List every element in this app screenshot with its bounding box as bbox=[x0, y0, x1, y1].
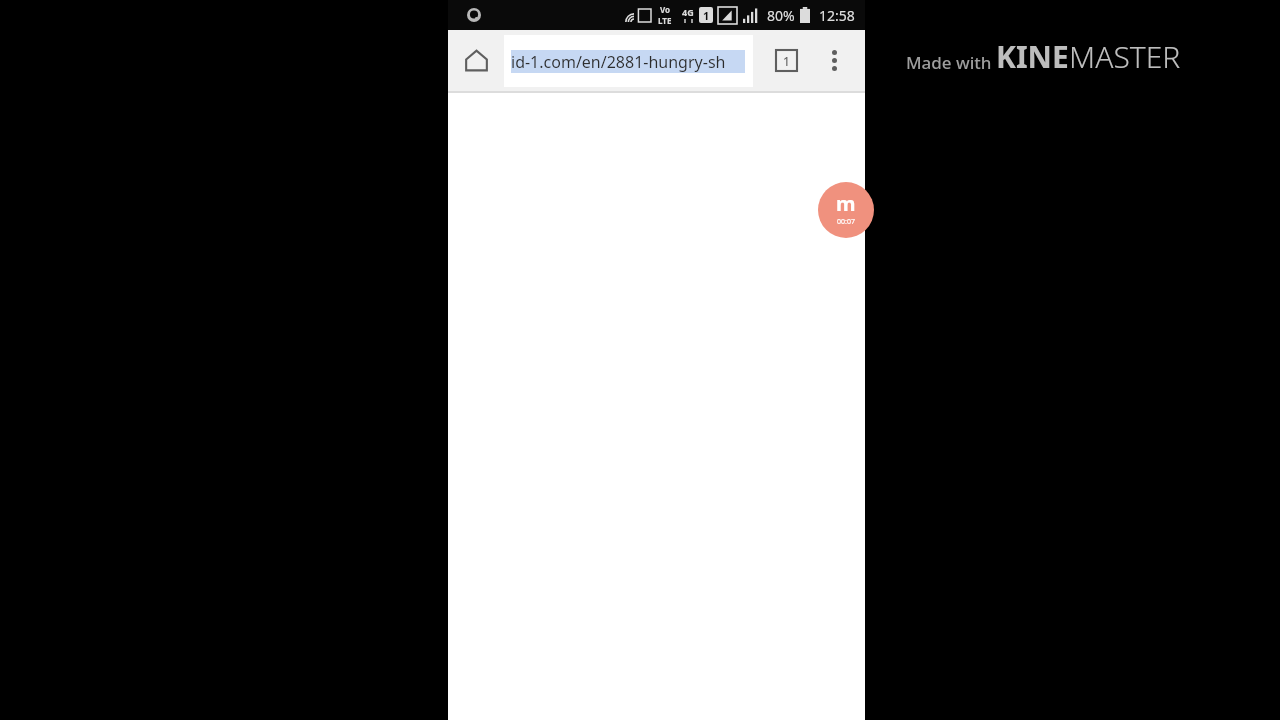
staticText: Vo bbox=[660, 4, 671, 15]
staticText: Made with bbox=[906, 51, 996, 74]
button[interactable]: Tabs bbox=[762, 30, 810, 91]
button[interactable]: More options bbox=[810, 30, 858, 91]
staticText: 00:07 bbox=[837, 217, 855, 227]
staticText: MASTER bbox=[1069, 36, 1181, 77]
staticText: m bbox=[836, 190, 856, 217]
staticText: LTE bbox=[658, 15, 672, 26]
staticText: 80% bbox=[767, 6, 795, 25]
button[interactable]: Home bbox=[448, 30, 504, 91]
staticText: 12:58 bbox=[819, 6, 855, 25]
staticText: 4G bbox=[682, 6, 694, 18]
staticText: id-1.com/en/2881-hungry-sh bbox=[511, 51, 726, 73]
staticText: 1 bbox=[703, 8, 710, 23]
button[interactable]: id-1.com/en/2881-hungry-sh bbox=[504, 35, 753, 87]
staticText: 1 bbox=[783, 53, 790, 69]
staticText: KINE bbox=[996, 36, 1069, 77]
